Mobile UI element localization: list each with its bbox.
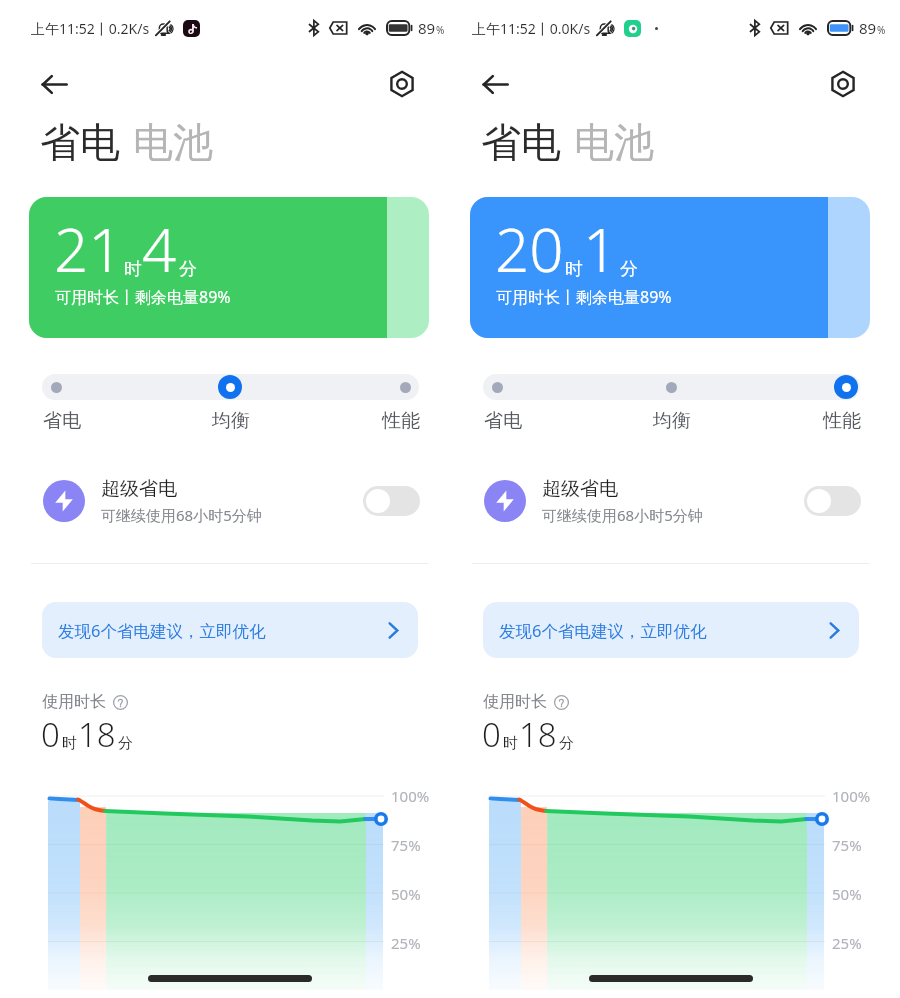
button[interactable]: Toggle super saver	[804, 486, 861, 516]
staticText: 超级省电	[101, 477, 177, 501]
button[interactable]: 21	[29, 197, 429, 338]
staticText: 4	[142, 208, 177, 290]
staticText: 上午11:52丨0.0K/s	[472, 19, 591, 38]
staticText: 均衡	[168, 409, 294, 433]
button[interactable]: 发现6个省电建议，立即优化	[42, 602, 418, 658]
staticText: 使用时长	[483, 692, 547, 712]
staticText: 18	[519, 712, 557, 757]
staticText: 89	[859, 18, 877, 38]
staticText: 性能	[735, 409, 861, 433]
staticText: 25%	[391, 933, 421, 953]
staticText: 100%	[391, 786, 430, 806]
staticText: 可用时长丨剩余电量89%	[496, 286, 672, 308]
staticText: 可继续使用68小时5分钟	[101, 505, 262, 525]
staticText: 50%	[832, 884, 862, 904]
button[interactable]: Back	[473, 62, 517, 106]
staticText: 省电	[481, 117, 561, 167]
button[interactable]: 超级省电	[471, 469, 861, 533]
staticText: 0	[482, 712, 501, 757]
button[interactable]	[834, 375, 858, 399]
staticText: 分	[179, 258, 197, 281]
staticText: 电池	[133, 117, 213, 167]
staticText: 均衡	[609, 409, 735, 433]
button[interactable]: Toggle super saver	[363, 486, 420, 516]
staticText: 发现6个省电建议，立即优化	[499, 619, 707, 642]
staticText: 1	[583, 208, 618, 290]
staticText: 25%	[832, 933, 862, 953]
staticText: 时	[565, 258, 583, 281]
button[interactable]	[218, 375, 242, 399]
button[interactable]: Settings	[821, 62, 865, 106]
staticText: 50%	[391, 884, 421, 904]
staticText: 超级省电	[542, 477, 618, 501]
staticText: 可用时长丨剩余电量89%	[55, 286, 231, 308]
button[interactable]: 发现6个省电建议，立即优化	[483, 602, 859, 658]
staticText: 时	[503, 734, 518, 753]
staticText: 75%	[832, 835, 862, 855]
button[interactable]: Back	[32, 62, 76, 106]
staticText: 分	[620, 258, 638, 281]
staticText: 上午11:52丨0.2K/s	[31, 19, 150, 38]
staticText: 时	[124, 258, 142, 281]
staticText: 21	[54, 208, 123, 290]
staticText: 100%	[832, 786, 871, 806]
button[interactable]	[393, 375, 417, 399]
staticText: 省电	[40, 117, 120, 167]
staticText: 发现6个省电建议，立即优化	[58, 619, 266, 642]
staticText: 20	[495, 208, 564, 290]
staticText: 分	[118, 734, 133, 753]
staticText: %	[436, 23, 445, 37]
button[interactable]: Settings	[380, 62, 424, 106]
staticText: 75%	[391, 835, 421, 855]
staticText: 时	[62, 734, 77, 753]
button[interactable]: 超级省电	[30, 469, 420, 533]
button[interactable]	[659, 375, 683, 399]
button[interactable]	[44, 375, 68, 399]
staticText: 省电	[484, 409, 609, 433]
staticText: 电池	[574, 117, 654, 167]
staticText: 89	[418, 18, 436, 38]
staticText: 可继续使用68小时5分钟	[542, 505, 703, 525]
staticText: 使用时长	[42, 692, 106, 712]
staticText: 性能	[294, 409, 420, 433]
staticText: 分	[559, 734, 574, 753]
staticText: 省电	[43, 409, 168, 433]
staticText: %	[877, 23, 886, 37]
staticText: 0	[41, 712, 60, 757]
button[interactable]: 20	[470, 197, 870, 338]
button[interactable]	[485, 375, 509, 399]
staticText: 18	[78, 712, 116, 757]
